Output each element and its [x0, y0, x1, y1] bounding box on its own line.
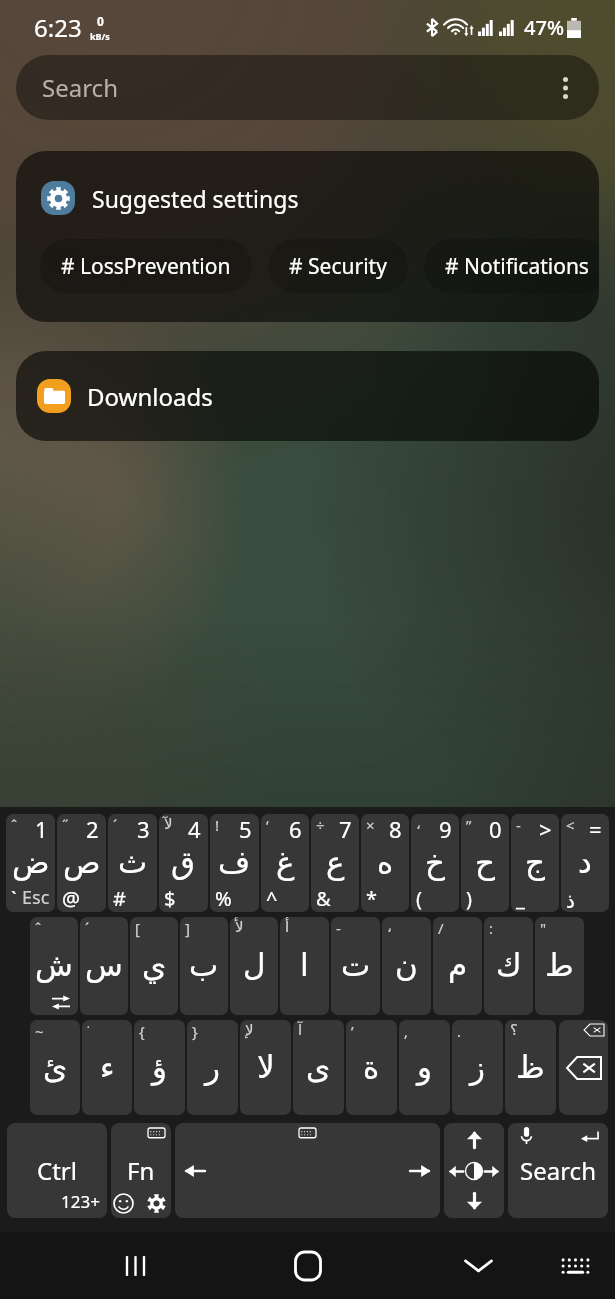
button[interactable]: ؟ [505, 1020, 556, 1115]
button[interactable]: Search [16, 55, 599, 120]
staticText: ) [466, 885, 472, 912]
button[interactable]: ] [180, 917, 228, 1015]
staticText: 6:23 [34, 11, 82, 44]
staticText: ص [63, 844, 101, 880]
staticText: % [215, 885, 232, 912]
button[interactable]: ‚ [399, 1020, 450, 1115]
button[interactable]: [ [130, 917, 178, 1015]
button[interactable]: # LossPrevention [40, 239, 252, 293]
button[interactable]: Fn [111, 1123, 171, 1218]
button[interactable]: ÷ [311, 814, 359, 912]
staticText: ل [243, 947, 266, 983]
button[interactable]: لإ [240, 1020, 291, 1115]
staticText: ض [12, 844, 50, 880]
button[interactable]: ، [411, 814, 459, 912]
staticText: # Notifications [445, 252, 589, 281]
button[interactable]: : [484, 917, 533, 1015]
staticText: Esc [22, 885, 50, 910]
staticText: × [366, 815, 375, 835]
staticText: @ [62, 885, 80, 912]
staticText: ج [525, 844, 546, 880]
button[interactable]: Switch keyboard [541, 1232, 609, 1299]
button[interactable]: Search [508, 1123, 608, 1218]
button[interactable]: " [535, 917, 584, 1015]
staticText: ث [118, 844, 148, 880]
staticText: 2 [86, 814, 99, 844]
button[interactable]: ´ [108, 814, 157, 912]
staticText: ” [466, 815, 472, 835]
staticText: و [417, 1049, 432, 1085]
button[interactable]: ! [210, 814, 259, 912]
button[interactable]: ´ [80, 917, 128, 1015]
button[interactable]: Backspace [559, 1020, 608, 1115]
button[interactable]: × [361, 814, 409, 912]
button[interactable]: ~ [30, 1020, 80, 1115]
staticText: = [589, 814, 602, 844]
button[interactable]: Cursor keys [444, 1123, 504, 1218]
staticText: ش [35, 947, 73, 983]
staticText: > [539, 814, 552, 844]
button[interactable]: Recents [101, 1232, 169, 1299]
button[interactable]: # Notifications [424, 239, 599, 293]
staticText: م [448, 947, 468, 983]
button[interactable]: Home [274, 1232, 342, 1299]
button[interactable]: ˆ [30, 917, 78, 1015]
staticText: ˝ [62, 815, 69, 835]
button[interactable]: Hide keyboard [444, 1232, 512, 1299]
staticText: لأ [235, 918, 244, 935]
staticText: ^ [266, 885, 278, 912]
button[interactable]: ˝ [57, 814, 106, 912]
staticText: } [192, 1021, 198, 1041]
button[interactable]: ˙ [82, 1020, 132, 1115]
button[interactable]: Suggested settings [16, 151, 599, 322]
button[interactable]: Ctrl [7, 1123, 107, 1218]
staticText: : [489, 918, 494, 938]
staticText: ء [100, 1049, 115, 1085]
button[interactable]: لآ [159, 814, 208, 912]
staticText: 4 [188, 814, 201, 844]
staticText: ˆ [11, 815, 18, 835]
staticText: ˆ [35, 918, 42, 938]
button[interactable]: ‘ [261, 814, 309, 912]
button[interactable]: لأ [230, 917, 278, 1015]
staticText: ´ [113, 815, 118, 835]
staticText: ظ [516, 1049, 545, 1085]
staticText: ز [470, 1049, 485, 1085]
staticText: Suggested settings [92, 183, 299, 214]
staticText: ه [377, 844, 394, 880]
staticText: ئ [43, 1049, 68, 1085]
button[interactable]: - [511, 814, 559, 912]
staticText: 1 [35, 814, 48, 844]
button[interactable]: } [187, 1020, 238, 1115]
staticText: Search [520, 1154, 596, 1187]
staticText: ي [142, 947, 167, 983]
button[interactable]: / [433, 917, 482, 1015]
staticText: 8 [389, 814, 402, 844]
staticText: . [457, 1021, 462, 1041]
button[interactable]: آ [293, 1020, 344, 1115]
staticText: ! [215, 815, 220, 835]
staticText: ح [475, 844, 496, 880]
staticText: 9 [439, 814, 452, 844]
button[interactable]: . [452, 1020, 503, 1115]
button[interactable]: < [561, 814, 609, 912]
button[interactable]: # Security [268, 239, 408, 293]
staticText: ة [363, 1049, 380, 1085]
staticText: # Security [289, 252, 387, 281]
button[interactable]: ، [382, 917, 431, 1015]
staticText: " [540, 918, 547, 938]
button[interactable]: - [331, 917, 380, 1015]
staticText: ~ [35, 1021, 44, 1041]
button[interactable]: { [134, 1020, 185, 1115]
staticText: { [139, 1021, 145, 1041]
button[interactable]: More options [549, 72, 581, 104]
button[interactable]: ” [461, 814, 509, 912]
button[interactable]: Space [175, 1123, 440, 1218]
staticText: [ [135, 918, 140, 938]
button[interactable]: أ [280, 917, 329, 1015]
button[interactable]: Downloads [16, 351, 599, 441]
staticText: ن [395, 947, 418, 983]
button[interactable]: ’ [346, 1020, 397, 1115]
button[interactable]: ˆ [6, 814, 55, 912]
staticText: _ [516, 885, 525, 912]
